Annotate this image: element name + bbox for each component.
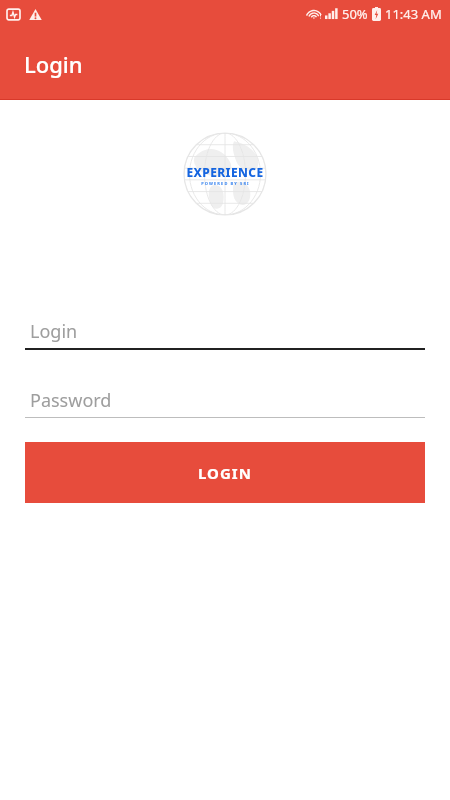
staticText: Password [30, 388, 112, 413]
staticText: EXPERIENCE [186, 164, 264, 180]
staticText: Login [24, 49, 83, 79]
staticText: LOGIN [198, 463, 252, 483]
staticText: 50% [342, 5, 368, 23]
staticText: POWERED BY SRI [201, 181, 250, 186]
button[interactable]: LOGIN [25, 442, 425, 503]
other: Mobile signal [325, 8, 338, 20]
button[interactable]: Password [25, 383, 425, 418]
other: Warning [29, 8, 42, 21]
staticText: 11:43 AM [385, 5, 442, 23]
other: Data usage [7, 8, 20, 21]
staticText: Login [30, 319, 78, 344]
other: Wi-Fi [307, 8, 322, 20]
button[interactable]: Login [25, 314, 425, 350]
other: Battery [372, 7, 381, 21]
